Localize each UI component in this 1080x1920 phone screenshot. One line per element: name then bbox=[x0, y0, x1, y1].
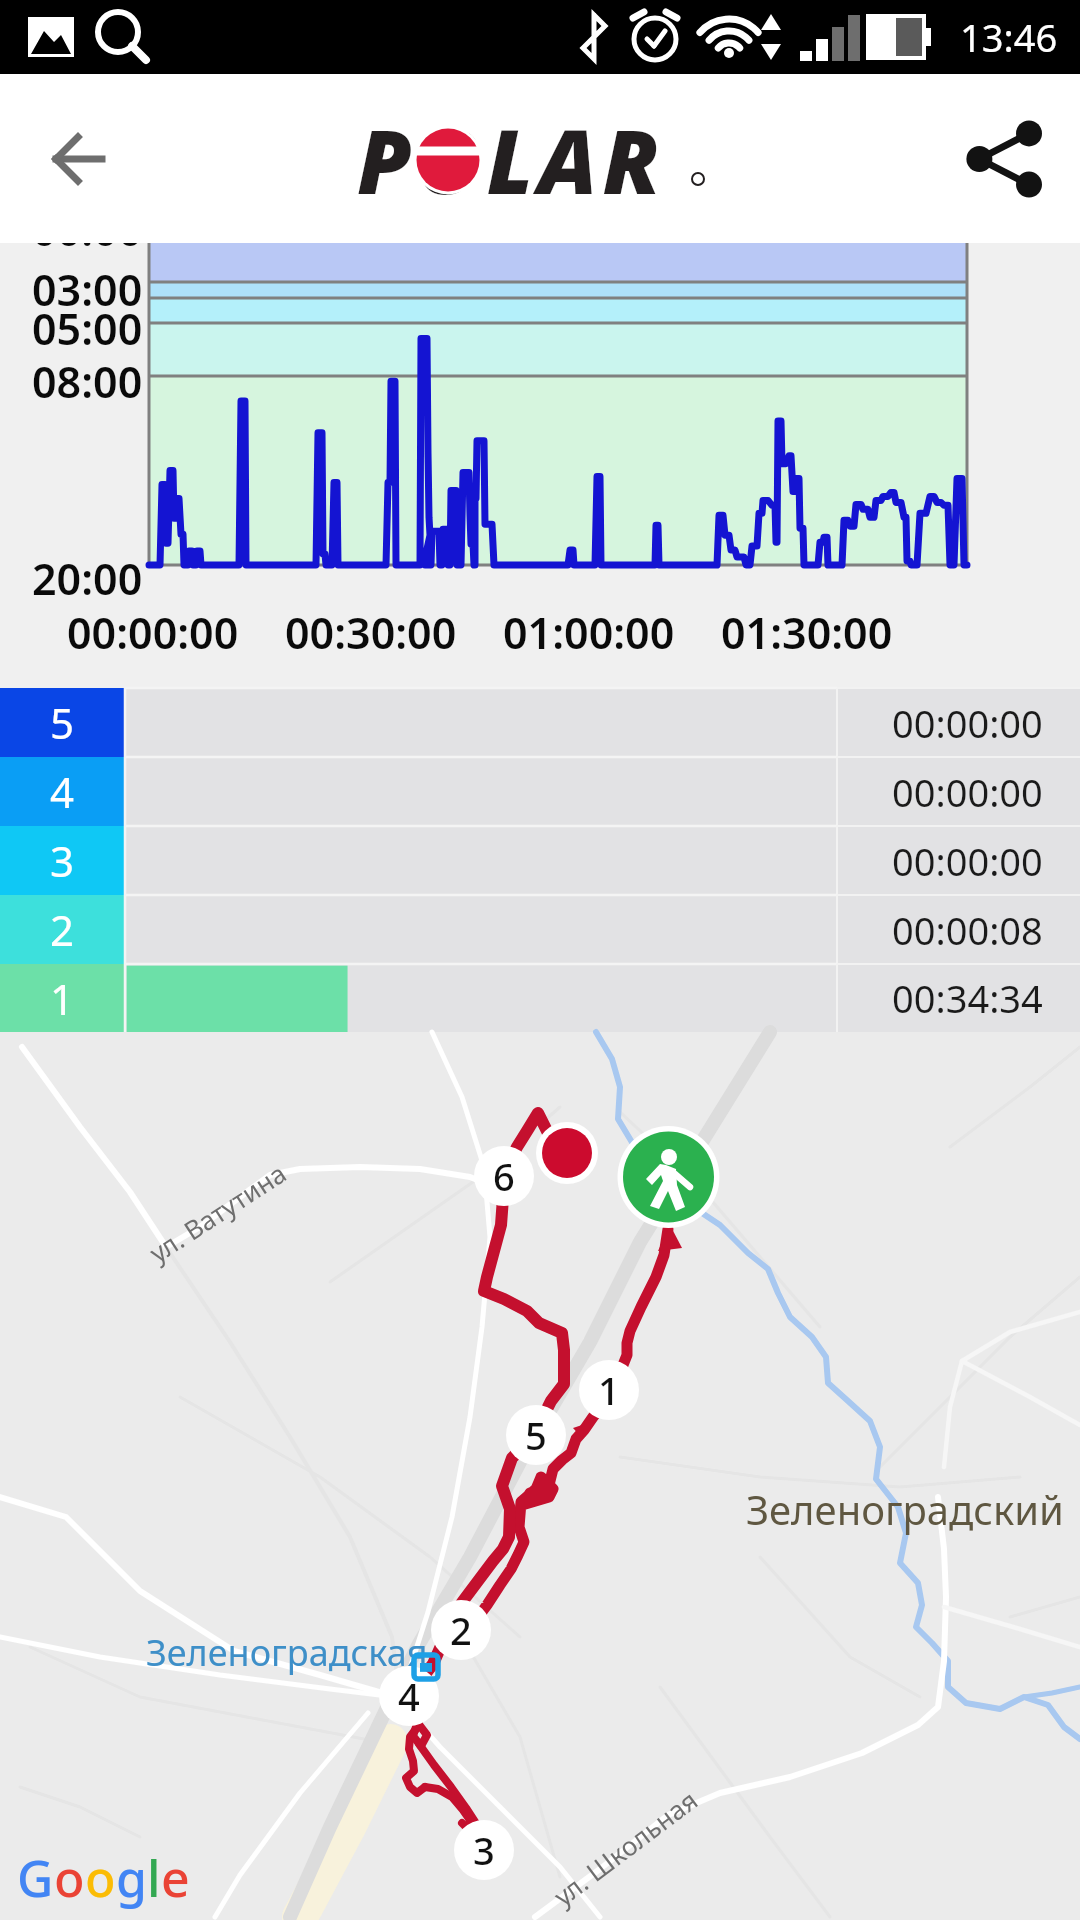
staticText: 00:00:00 bbox=[892, 835, 1043, 887]
staticText: 00:00 bbox=[32, 243, 143, 254]
staticText: o bbox=[85, 1844, 116, 1912]
button[interactable]: Lap 2 bbox=[431, 1600, 491, 1660]
button[interactable]: Route map bbox=[0, 1032, 1080, 1920]
staticText: Зеленоградский bbox=[746, 1482, 1064, 1536]
staticText: l bbox=[147, 1844, 161, 1912]
staticText: 00:00:00 bbox=[67, 603, 239, 659]
staticText: 4 bbox=[398, 1670, 420, 1722]
staticText: ул. Школьная bbox=[546, 1782, 704, 1913]
staticText: 2 bbox=[50, 901, 75, 958]
staticText: g bbox=[116, 1844, 147, 1912]
button[interactable]: Lap 5 bbox=[506, 1405, 566, 1465]
staticText: 00:30:00 bbox=[285, 603, 457, 659]
staticText: 6 bbox=[493, 1150, 515, 1202]
staticText: 5 bbox=[525, 1409, 547, 1461]
button[interactable]: Lap 6 bbox=[474, 1146, 534, 1206]
staticText: 05:00 bbox=[32, 299, 143, 353]
staticText: 00:00:00 bbox=[892, 766, 1043, 818]
button[interactable]: 5 bbox=[0, 688, 1080, 757]
button[interactable]: Lap 1 bbox=[579, 1360, 639, 1420]
button[interactable]: 3 bbox=[0, 826, 1080, 895]
staticText: 13:46 bbox=[960, 11, 1058, 63]
button[interactable]: Lap 3 bbox=[454, 1820, 514, 1880]
staticText: 4 bbox=[50, 763, 75, 820]
staticText: 01:30:00 bbox=[721, 603, 893, 659]
staticText: 1 bbox=[50, 970, 75, 1027]
button[interactable]: 1 bbox=[0, 964, 1080, 1032]
staticText: o bbox=[54, 1844, 85, 1912]
staticText: G bbox=[17, 1844, 54, 1912]
staticText: 20:00 bbox=[32, 549, 143, 603]
staticText: 00:00:08 bbox=[892, 904, 1043, 956]
staticText: 00:34:34 bbox=[892, 972, 1043, 1024]
staticText: 00:00:00 bbox=[892, 697, 1043, 749]
button[interactable]: Back bbox=[0, 74, 160, 243]
button[interactable]: 4 bbox=[0, 757, 1080, 826]
staticText: 1 bbox=[598, 1364, 620, 1416]
staticText: Зеленоградская bbox=[146, 1628, 428, 1677]
staticText: 3 bbox=[473, 1824, 495, 1876]
staticText: ул. Ватутина bbox=[142, 1155, 293, 1270]
staticText: 2 bbox=[450, 1604, 472, 1656]
staticText: 01:00:00 bbox=[503, 603, 675, 659]
staticText: 03:00 bbox=[32, 260, 143, 314]
staticText: 3 bbox=[50, 832, 75, 889]
button[interactable]: Lap 4 bbox=[379, 1666, 439, 1726]
staticText: POLAR bbox=[357, 100, 665, 220]
button[interactable]: Share bbox=[930, 74, 1080, 243]
staticText: e bbox=[161, 1844, 190, 1912]
staticText: 5 bbox=[50, 694, 75, 751]
staticText: 08:00 bbox=[32, 352, 143, 406]
button[interactable]: 2 bbox=[0, 895, 1080, 964]
